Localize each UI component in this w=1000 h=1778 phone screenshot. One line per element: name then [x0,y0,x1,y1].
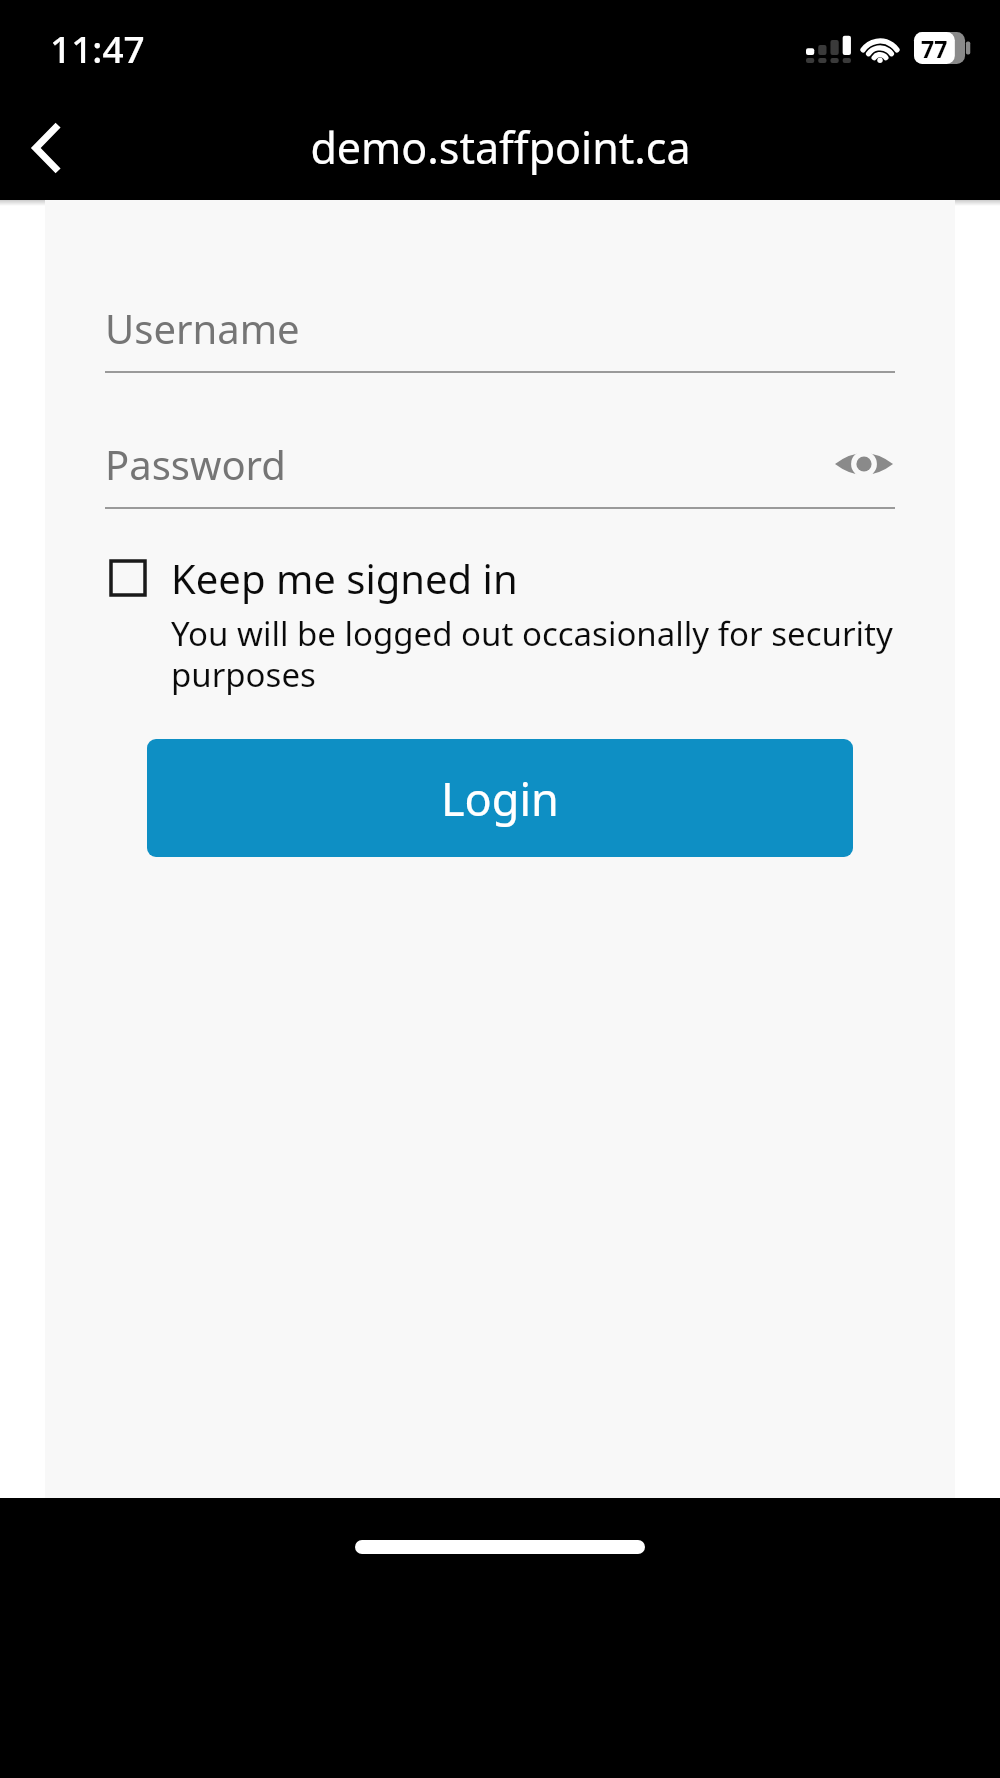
staticText: Password [105,437,286,491]
staticText: 11:47 [50,23,145,73]
staticText: Keep me signed in [171,551,518,605]
button[interactable]: Username [105,285,895,371]
staticText: demo.staffpoint.ca [310,118,691,177]
staticText: Username [105,301,300,355]
button[interactable]: Back [0,100,96,196]
button[interactable]: Password [105,421,895,507]
button[interactable]: Show password [833,433,895,495]
button[interactable]: Keep me signed in [107,551,895,697]
button[interactable]: Login [147,739,853,857]
staticText: 77 [921,33,948,64]
staticText: Login [441,768,559,829]
staticText: You will be logged out occasionally for … [171,611,895,697]
